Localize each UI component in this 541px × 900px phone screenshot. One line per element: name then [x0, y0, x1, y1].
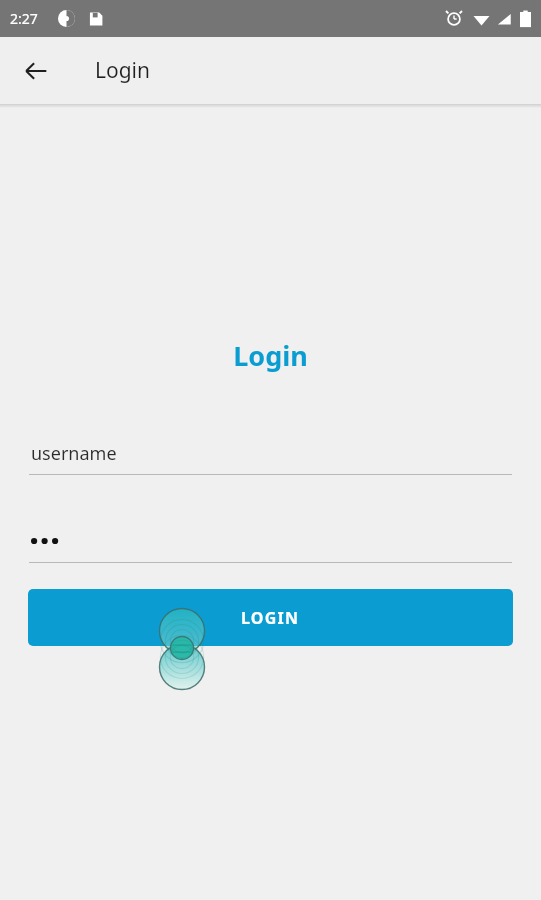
staticText: Login	[0, 337, 541, 374]
staticText: username	[31, 441, 117, 466]
staticText: 2:27	[10, 9, 38, 28]
button[interactable]	[29, 528, 512, 563]
button[interactable]: Back	[12, 47, 60, 95]
button[interactable]: username	[29, 441, 512, 475]
staticText: LOGIN	[241, 607, 300, 629]
staticText: Login	[95, 56, 151, 85]
button[interactable]: LOGIN	[28, 589, 513, 646]
